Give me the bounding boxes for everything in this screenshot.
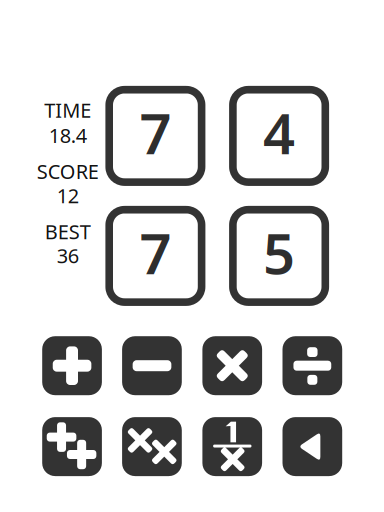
button[interactable]: 5	[233, 210, 325, 302]
staticText: 7	[139, 95, 171, 170]
button[interactable]: 7	[109, 90, 202, 182]
button[interactable]: Add	[42, 336, 102, 395]
button[interactable]: 4	[233, 90, 325, 182]
staticText: SCORE	[37, 158, 99, 185]
button[interactable]: Multiply all	[122, 417, 182, 476]
staticText: 4	[263, 95, 295, 170]
staticText: 7	[139, 215, 171, 290]
staticText: TIME	[44, 97, 91, 123]
button[interactable]: Subtract	[122, 336, 182, 395]
button[interactable]: 7	[109, 210, 202, 302]
staticText: 5	[263, 215, 295, 290]
staticText: 12	[57, 182, 79, 209]
button[interactable]: Reciprocal	[202, 417, 262, 476]
staticText: 18.4	[49, 122, 87, 148]
button[interactable]: Undo	[282, 417, 342, 476]
staticText: 36	[57, 242, 79, 269]
staticText: BEST	[45, 218, 91, 245]
button[interactable]: Divide	[282, 336, 342, 395]
button[interactable]: Add all	[42, 417, 102, 476]
button[interactable]: Multiply	[202, 336, 262, 395]
